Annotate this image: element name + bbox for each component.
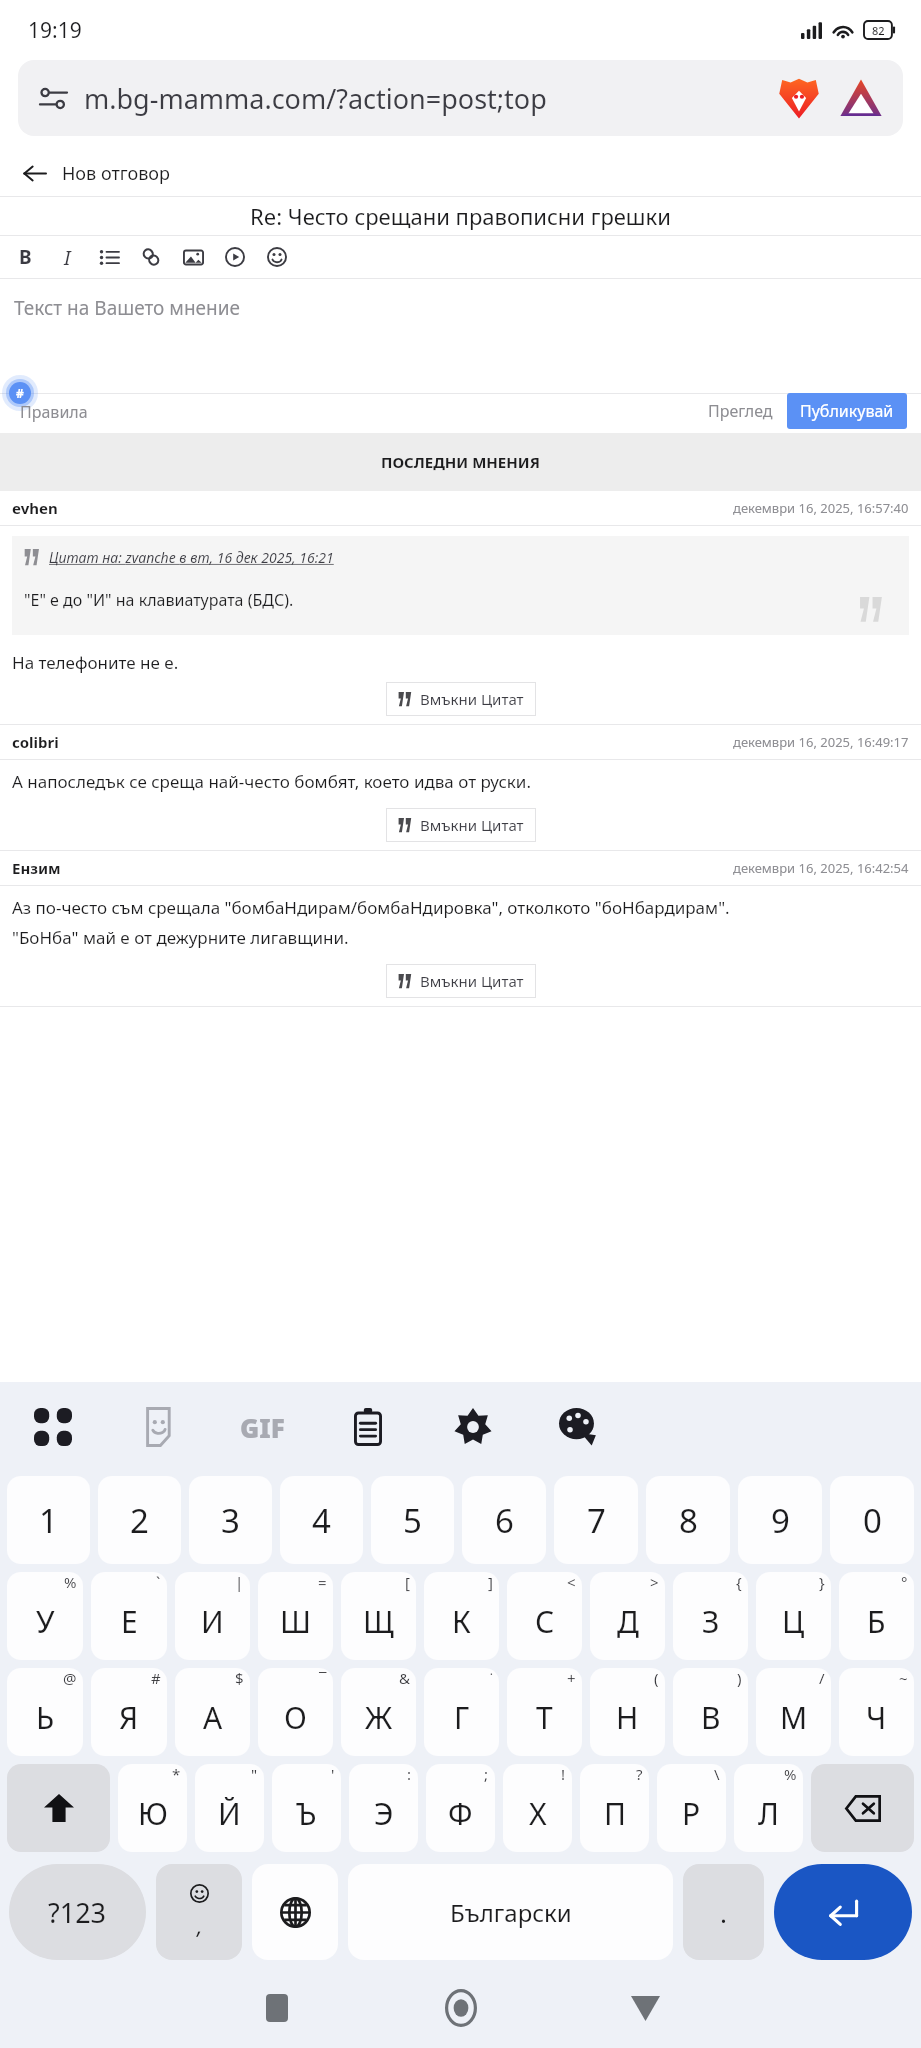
button[interactable]: Insert hashtag [2,375,38,411]
button[interactable]: Stickers [105,1382,210,1472]
button[interactable]: И [175,1572,250,1660]
staticText: И [201,1601,224,1642]
button[interactable]: К [424,1572,499,1660]
button[interactable]: Insert video [214,236,256,278]
button[interactable]: Ц [756,1572,831,1660]
button[interactable]: colibri [12,732,59,752]
button[interactable]: В [673,1668,748,1756]
button[interactable]: Т [507,1668,582,1756]
staticText: ˙ [490,1668,493,1688]
staticText: # [151,1668,161,1688]
button[interactable]: Recents [250,1981,304,2035]
button[interactable]: З [673,1572,748,1660]
staticText: 7 [587,1498,606,1543]
button[interactable]: 7 [554,1476,638,1564]
button[interactable]: 5 [371,1476,454,1564]
button[interactable]: Вмъкни Цитат [386,682,536,716]
button[interactable]: Ъ [272,1764,341,1852]
button[interactable]: Р [657,1764,726,1852]
button[interactable]: Insert emoji [256,236,298,278]
button[interactable]: Л [734,1764,803,1852]
button[interactable]: Backspace [811,1764,914,1852]
button[interactable]: Enter [774,1864,912,1960]
staticText: Э [374,1793,394,1834]
button[interactable]: Period [683,1864,764,1960]
staticText: B [19,244,32,270]
button[interactable]: Ш [258,1572,333,1660]
button[interactable]: Insert image [172,236,214,278]
button[interactable]: Текст на Вашето мнение [0,279,921,371]
button[interactable]: Theme [525,1382,630,1472]
button[interactable]: Brave Rewards [837,74,885,122]
button[interactable]: Ф [426,1764,495,1852]
button[interactable]: Й [195,1764,264,1852]
button[interactable]: Change language [252,1864,338,1960]
button[interactable]: 0 [830,1476,914,1564]
button[interactable]: О [258,1668,333,1756]
button[interactable]: Shift [7,1764,110,1852]
button[interactable]: GIF [210,1382,315,1472]
button[interactable]: Г [424,1668,499,1756]
button[interactable]: Site settings [36,81,70,115]
button[interactable]: Ю [118,1764,187,1852]
button[interactable]: Н [590,1668,665,1756]
button[interactable]: Х [503,1764,572,1852]
button[interactable]: Правила [0,401,88,433]
button[interactable]: ?123 [9,1864,146,1960]
button[interactable]: Публикувай [787,393,907,429]
button[interactable]: 6 [462,1476,546,1564]
button[interactable]: evhen [12,498,58,518]
button[interactable]: 1 [7,1476,90,1564]
button[interactable]: Цитат на: zvanche в вт, 16 дек 2025, 16:… [49,548,334,567]
button[interactable]: Щ [341,1572,416,1660]
button[interactable]: Italic [46,236,88,278]
button[interactable]: С [507,1572,582,1660]
button[interactable]: У [7,1572,83,1660]
button[interactable]: Ь [7,1668,83,1756]
button[interactable]: Site settings [18,60,903,136]
button[interactable]: Brave Shields [775,74,823,122]
button[interactable]: 4 [280,1476,363,1564]
staticText: П [604,1793,626,1834]
button[interactable]: 9 [738,1476,822,1564]
button[interactable]: Clipboard [315,1382,420,1472]
button[interactable]: Български [348,1864,673,1960]
staticText: + [567,1668,576,1688]
button[interactable]: Bullet list [88,236,130,278]
staticText: декември 16, 2025, 16:42:54 [733,859,909,877]
staticText: Т [536,1697,553,1738]
button[interactable]: Преглед [702,394,779,428]
staticText: На телефоните не е. [12,651,179,674]
button[interactable]: Apps [0,1382,105,1472]
staticText: 4 [312,1498,331,1543]
button[interactable]: Е [91,1572,167,1660]
button[interactable]: Back [618,1981,672,2035]
button[interactable]: Э [349,1764,418,1852]
button[interactable]: Insert link [130,236,172,278]
button[interactable]: Back [14,153,54,193]
button[interactable]: П [580,1764,649,1852]
button[interactable]: Б [839,1572,914,1660]
staticText: Г [454,1697,470,1738]
staticText: \ [714,1764,720,1784]
button[interactable]: Д [590,1572,665,1660]
button[interactable]: 3 [189,1476,272,1564]
button[interactable]: А [175,1668,250,1756]
button[interactable]: Вмъкни Цитат [386,964,536,998]
button[interactable]: Emoji and comma [156,1864,242,1960]
staticText: $ [235,1668,244,1688]
staticText: Вмъкни Цитат [420,689,524,709]
button[interactable]: Вмъкни Цитат [386,808,536,842]
button[interactable]: 8 [646,1476,730,1564]
button[interactable]: Ензим [12,858,61,878]
button[interactable]: М [756,1668,831,1756]
staticText: | [235,1572,244,1592]
button[interactable]: Settings [420,1382,525,1472]
staticText: Л [758,1793,779,1834]
button[interactable]: Я [91,1668,167,1756]
button[interactable]: Ч [839,1668,914,1756]
button[interactable]: Ж [341,1668,416,1756]
button[interactable]: Home [432,1979,490,2037]
button[interactable]: Bold [4,236,46,278]
button[interactable]: 2 [98,1476,181,1564]
